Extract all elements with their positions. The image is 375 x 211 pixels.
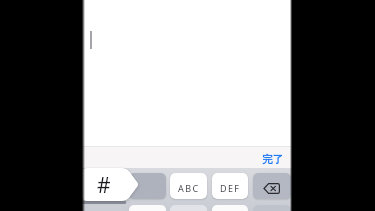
button[interactable] <box>253 173 291 199</box>
button[interactable]: 完了 <box>262 153 283 166</box>
button[interactable]: ABC <box>170 173 207 199</box>
button[interactable] <box>129 205 166 211</box>
button[interactable]: DEF <box>212 173 248 199</box>
staticText: DEF <box>220 182 241 194</box>
button[interactable] <box>170 205 207 211</box>
staticText: # <box>97 171 111 200</box>
button[interactable] <box>129 173 166 199</box>
staticText: 完了 <box>262 153 283 166</box>
button[interactable] <box>253 205 291 211</box>
button[interactable] <box>212 205 248 211</box>
staticText: ABC <box>178 182 200 194</box>
button[interactable]: # <box>82 168 139 201</box>
